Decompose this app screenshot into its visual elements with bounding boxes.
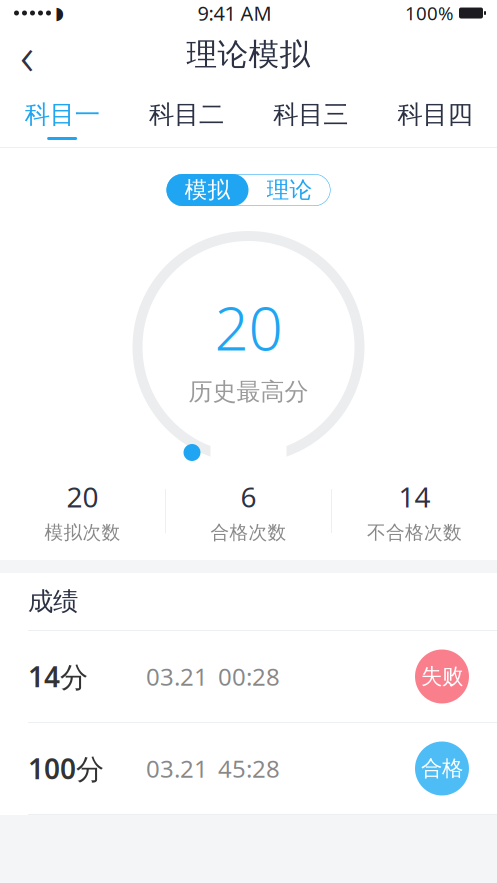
staticText: 00:28 — [218, 661, 280, 692]
staticText: 100% — [405, 1, 454, 25]
button[interactable]: Back — [0, 26, 54, 82]
staticText: 03.21 — [146, 753, 208, 784]
staticText: 失败 — [421, 663, 463, 690]
button[interactable]: 科目四 — [373, 83, 497, 147]
button[interactable]: 科目二 — [124, 83, 248, 147]
staticText: 20 — [214, 287, 282, 367]
staticText: 03.21 — [146, 661, 208, 692]
staticText: 理论模拟 — [186, 36, 310, 73]
staticText: 科目三 — [273, 99, 348, 130]
button[interactable]: 14分 — [0, 631, 497, 722]
button[interactable]: 100分 — [0, 723, 497, 814]
button[interactable]: 科目三 — [248, 83, 373, 147]
staticText: 模拟 — [184, 176, 230, 204]
staticText: 合格次数 — [210, 521, 286, 544]
staticText: 科目二 — [149, 99, 224, 130]
button[interactable]: 理论 — [248, 174, 330, 206]
button[interactable]: 模拟 — [166, 174, 248, 206]
staticText: 理论 — [266, 176, 312, 204]
staticText: 历史最高分 — [188, 377, 308, 407]
staticText: 模拟次数 — [44, 521, 120, 544]
staticText: 合格 — [421, 755, 463, 782]
staticText: 9:41 AM — [197, 0, 271, 26]
staticText: ‹ — [20, 19, 34, 90]
staticText: 科目四 — [397, 99, 472, 130]
staticText: 45:28 — [218, 753, 280, 784]
staticText: 20 — [66, 478, 98, 515]
staticText: 14 — [398, 478, 430, 515]
staticText: 不合格次数 — [367, 521, 462, 544]
staticText: 成绩 — [28, 586, 78, 617]
staticText: 6 — [240, 478, 256, 515]
staticText: 100分 — [28, 750, 104, 787]
staticText: 科目一 — [25, 99, 100, 130]
staticText: ◗ — [55, 3, 64, 23]
staticText: 14分 — [28, 658, 88, 695]
button[interactable]: 科目一 — [0, 83, 124, 147]
